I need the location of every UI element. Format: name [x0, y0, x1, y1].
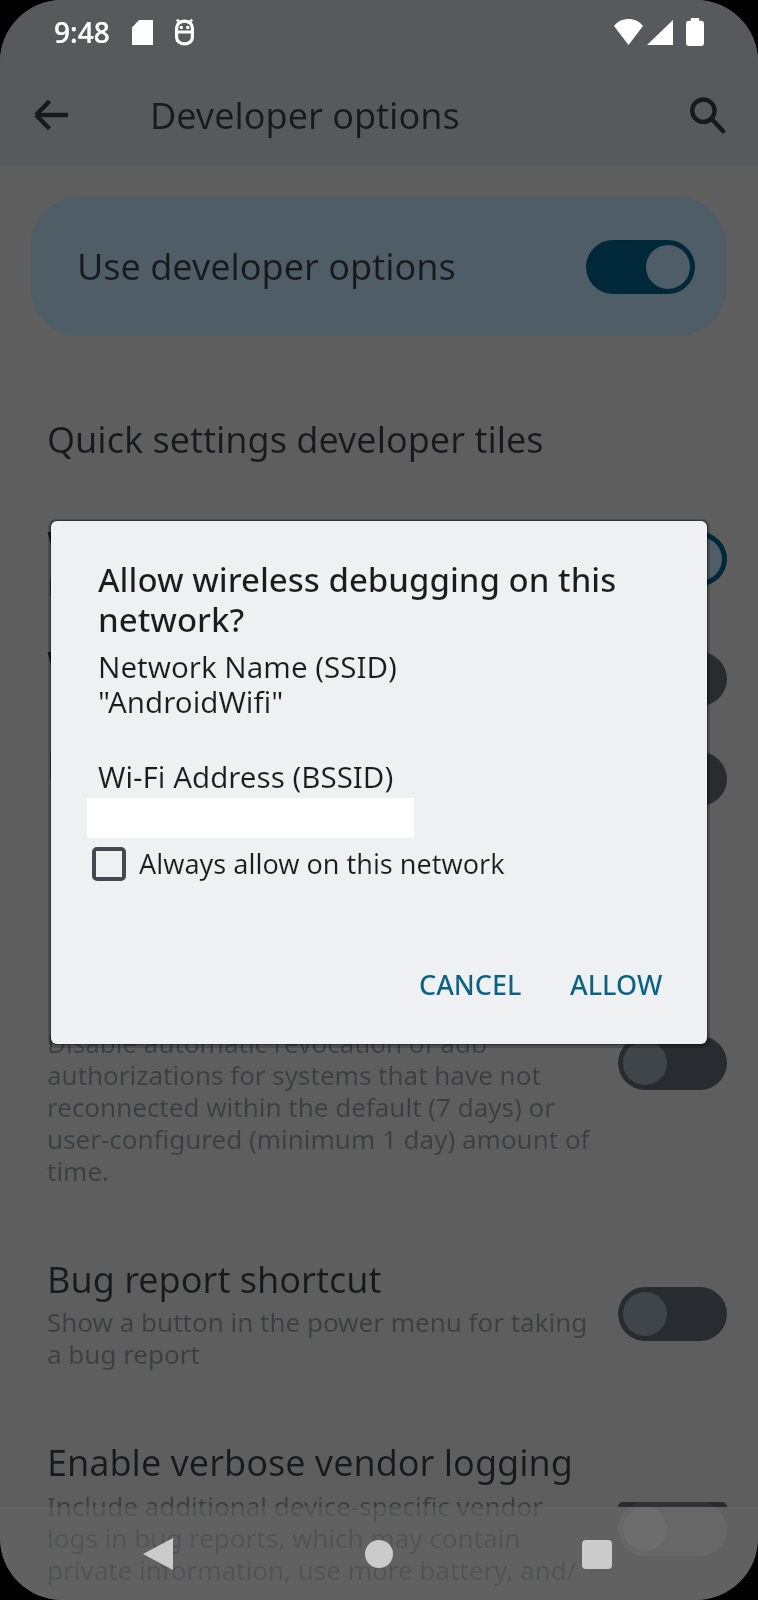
- staticText: Wireless debugging authorizations: [47, 640, 637, 689]
- button[interactable]: Back: [0, 64, 102, 166]
- staticText: Wireless debugging: [47, 520, 383, 569]
- button[interactable]: Bug report shortcut: [0, 1255, 758, 1304]
- staticText: Always allow on this network: [139, 845, 505, 882]
- button[interactable]: Wireless debugging: [0, 520, 758, 569]
- button[interactable]: ALLOW: [554, 956, 679, 1013]
- staticText: Disable adb authorization timeout: [47, 740, 625, 789]
- staticText: Show a button in the power menu for taki…: [47, 1304, 588, 1372]
- staticText: Disable automatic revocation of adb auth…: [47, 1025, 590, 1189]
- button[interactable]: CANCEL: [403, 956, 538, 1013]
- staticText: Developer options: [150, 91, 460, 140]
- staticText: 9:48: [54, 13, 110, 51]
- staticText: Bug report shortcut: [47, 1255, 382, 1304]
- staticText: Allow wireless debugging on this network…: [98, 557, 668, 642]
- staticText: Enable verbose vendor logging: [47, 1438, 573, 1487]
- staticText: Wi-Fi Address (BSSID): [98, 756, 394, 796]
- button[interactable]: Back: [114, 1510, 202, 1598]
- button[interactable]: Use developer options: [31, 197, 726, 336]
- staticText: Debug mode when Wi-Fi is connected: [47, 568, 507, 603]
- staticText: Quick settings developer tiles: [47, 415, 544, 464]
- button[interactable]: Home: [335, 1510, 423, 1598]
- button[interactable]: Always allow on this network: [92, 845, 505, 882]
- button[interactable]: Search: [656, 64, 758, 166]
- button[interactable]: Wireless debugging authorizations: [0, 640, 758, 689]
- button[interactable]: Recent apps: [553, 1510, 641, 1598]
- staticText: Include additional device-specific vendo…: [47, 1488, 577, 1588]
- staticText: Use developer options: [77, 242, 456, 291]
- button[interactable]: Enable verbose vendor logging: [0, 1438, 758, 1487]
- button[interactable]: Disable adb authorization timeout: [0, 740, 758, 789]
- staticText: Network Name (SSID) "AndroidWifi": [98, 646, 397, 722]
- staticText: CANCEL: [419, 966, 522, 1003]
- staticText: ALLOW: [570, 966, 663, 1003]
